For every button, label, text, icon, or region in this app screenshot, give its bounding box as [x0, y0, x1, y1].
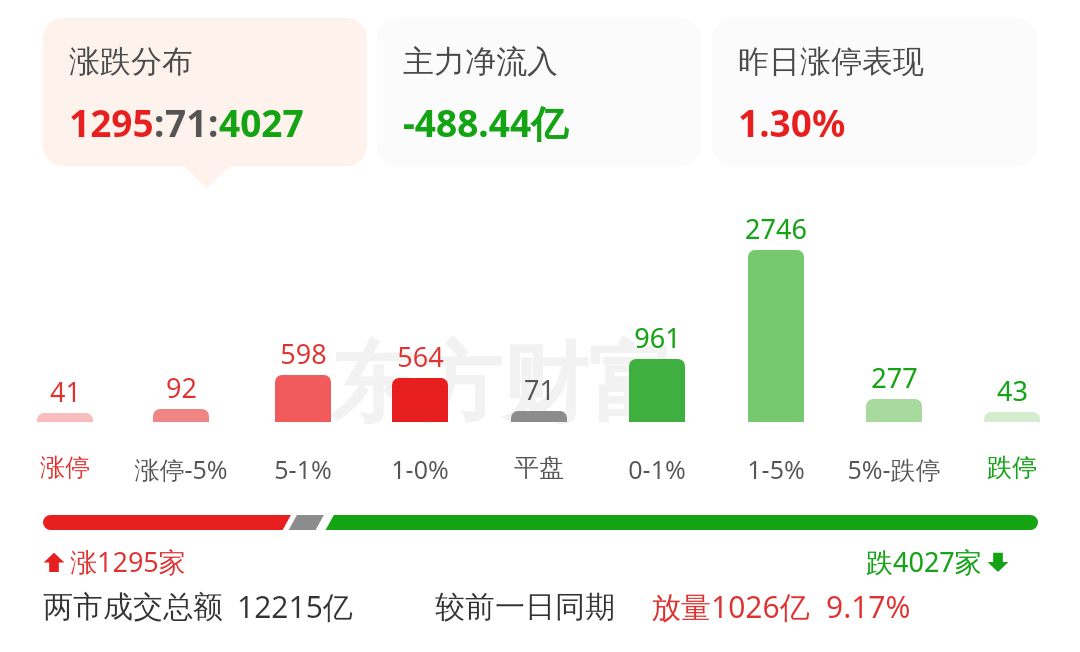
- staticText: 598: [280, 335, 327, 372]
- button[interactable]: Advancing: [43, 543, 186, 580]
- staticText: 43: [997, 372, 1028, 409]
- staticText: 12215亿: [237, 586, 353, 627]
- staticText: :: [154, 97, 165, 147]
- staticText: 71: [524, 371, 555, 408]
- staticText: 5%-跌停: [847, 452, 941, 486]
- staticText: 较前一日同期: [435, 588, 615, 626]
- staticText: 涨停: [40, 452, 90, 483]
- staticText: 涨1295家: [70, 543, 186, 580]
- staticText: 东方财富: [330, 330, 674, 438]
- staticText: :: [208, 97, 219, 147]
- staticText: 放量1026亿: [651, 586, 810, 627]
- button[interactable]: 两市成交总额: [0, 586, 1080, 627]
- staticText: 564: [397, 338, 444, 375]
- staticText: 跌停: [987, 452, 1037, 483]
- staticText: 71: [165, 97, 208, 147]
- other: Advancing: [43, 551, 65, 573]
- staticText: 5-1%: [274, 452, 332, 486]
- staticText: 1.30%: [738, 97, 846, 147]
- staticText: 1-5%: [747, 452, 805, 486]
- staticText: 涨停-5%: [134, 452, 228, 486]
- staticText: 两市成交总额: [43, 588, 223, 626]
- staticText: 9.17%: [826, 586, 911, 627]
- staticText: -488.44亿: [403, 97, 569, 148]
- button[interactable]: 跌4027家: [866, 543, 1009, 580]
- staticText: 1295: [69, 97, 154, 147]
- staticText: 277: [871, 359, 918, 396]
- staticText: 1-0%: [391, 452, 449, 486]
- staticText: 2746: [745, 210, 807, 247]
- staticText: 昨日涨停表现: [738, 42, 924, 81]
- button[interactable]: 主力净流入: [377, 18, 701, 166]
- staticText: 跌4027家: [866, 543, 982, 580]
- staticText: 4027: [219, 97, 304, 147]
- button[interactable]: 昨日涨停表现: [712, 18, 1037, 166]
- staticText: 0-1%: [628, 452, 686, 486]
- staticText: 涨跌分布: [69, 42, 193, 81]
- staticText: 平盘: [514, 452, 564, 483]
- staticText: 主力净流入: [403, 42, 558, 81]
- staticText: 41: [50, 373, 81, 410]
- staticText: 92: [166, 369, 197, 406]
- staticText: 961: [634, 319, 681, 356]
- button[interactable]: 涨跌分布: [43, 18, 367, 166]
- other: Declining: [987, 551, 1009, 573]
